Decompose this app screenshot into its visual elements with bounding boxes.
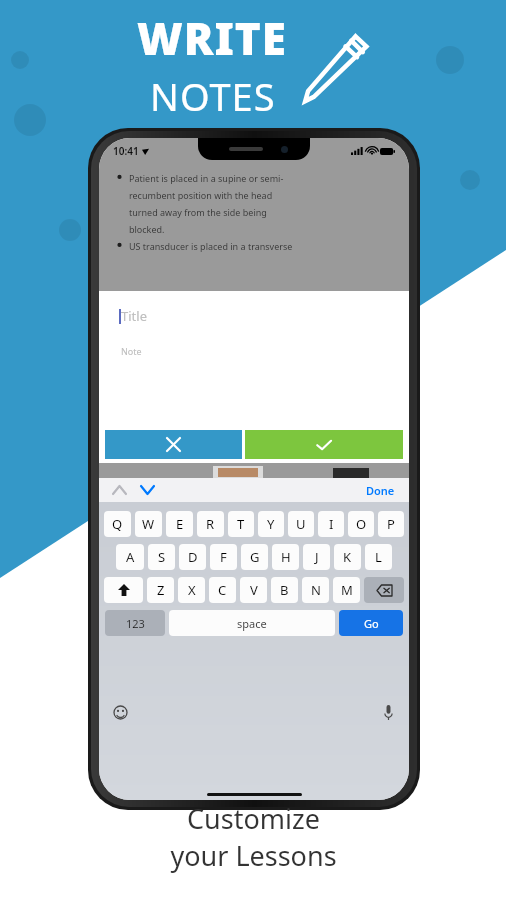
staticText: D bbox=[188, 548, 198, 566]
staticText: space bbox=[237, 616, 267, 631]
button[interactable]: S bbox=[148, 544, 175, 570]
button[interactable]: H bbox=[272, 544, 299, 570]
staticText: 10:41 bbox=[113, 144, 139, 158]
staticText: Q bbox=[112, 515, 123, 533]
button[interactable]: space bbox=[169, 610, 335, 636]
staticText: recumbent position with the head bbox=[129, 189, 273, 201]
staticText: X bbox=[188, 581, 196, 599]
button[interactable]: Backspace bbox=[364, 577, 404, 603]
button[interactable]: Dictate bbox=[379, 703, 397, 721]
button[interactable]: Cancel bbox=[105, 430, 242, 459]
button[interactable]: P bbox=[378, 511, 404, 537]
staticText: Go bbox=[364, 616, 379, 631]
button[interactable]: Shift bbox=[104, 577, 143, 603]
staticText: E bbox=[176, 515, 184, 533]
button[interactable]: M bbox=[333, 577, 360, 603]
button[interactable]: Next field bbox=[137, 480, 157, 500]
staticText: your Lessons bbox=[170, 837, 337, 874]
staticText: L bbox=[375, 548, 382, 566]
staticText: U bbox=[296, 515, 306, 533]
staticText: O bbox=[356, 515, 367, 533]
button[interactable]: G bbox=[241, 544, 268, 570]
staticText: N bbox=[311, 581, 321, 599]
button[interactable]: Save bbox=[245, 430, 403, 459]
button[interactable]: K bbox=[334, 544, 361, 570]
button[interactable]: Q bbox=[104, 511, 131, 537]
button[interactable]: I bbox=[318, 511, 344, 537]
button[interactable]: E bbox=[166, 511, 193, 537]
staticText: C bbox=[218, 581, 227, 599]
button[interactable]: U bbox=[288, 511, 314, 537]
staticText: I bbox=[329, 515, 334, 533]
staticText: turned away from the side being bbox=[129, 206, 267, 218]
button[interactable]: Previous field bbox=[109, 480, 129, 500]
staticText: H bbox=[281, 548, 291, 566]
button[interactable]: F bbox=[210, 544, 237, 570]
button[interactable]: T bbox=[228, 511, 254, 537]
staticText: V bbox=[250, 581, 258, 599]
button[interactable]: Emoji bbox=[111, 703, 129, 721]
button[interactable]: W bbox=[135, 511, 162, 537]
button[interactable]: R bbox=[197, 511, 224, 537]
button[interactable]: Go bbox=[339, 610, 403, 636]
staticText: P bbox=[387, 515, 395, 533]
staticText: NOTES bbox=[150, 70, 276, 122]
button[interactable]: Y bbox=[258, 511, 284, 537]
staticText: W bbox=[142, 515, 155, 533]
button[interactable]: B bbox=[271, 577, 298, 603]
staticText: Patient is placed in a supine or semi- bbox=[129, 172, 284, 184]
staticText: B bbox=[280, 581, 289, 599]
staticText: Customize bbox=[187, 800, 320, 837]
button[interactable]: Done bbox=[362, 481, 399, 500]
staticText: R bbox=[206, 515, 215, 533]
staticText: blocked. bbox=[129, 223, 165, 235]
button[interactable]: D bbox=[179, 544, 206, 570]
staticText: US transducer is placed in a transverse bbox=[129, 240, 293, 252]
staticText: Z bbox=[157, 581, 165, 599]
staticText: WRITE bbox=[137, 8, 288, 68]
button[interactable]: Z bbox=[147, 577, 174, 603]
staticText: K bbox=[343, 548, 352, 566]
button[interactable]: O bbox=[348, 511, 374, 537]
staticText: S bbox=[158, 548, 166, 566]
staticText: G bbox=[250, 548, 260, 566]
button[interactable]: V bbox=[240, 577, 267, 603]
staticText: Title bbox=[121, 307, 147, 325]
button[interactable]: L bbox=[365, 544, 392, 570]
staticText: J bbox=[315, 548, 319, 566]
button[interactable]: X bbox=[178, 577, 205, 603]
staticText: Done bbox=[366, 483, 395, 498]
button[interactable]: J bbox=[303, 544, 330, 570]
staticText: Note bbox=[121, 345, 142, 357]
staticText: F bbox=[220, 548, 227, 566]
button[interactable]: C bbox=[209, 577, 236, 603]
staticText: Y bbox=[267, 515, 275, 533]
button[interactable]: 123 bbox=[105, 610, 165, 636]
button[interactable]: A bbox=[116, 544, 144, 570]
staticText: 123 bbox=[126, 616, 145, 631]
staticText: A bbox=[126, 548, 135, 566]
button[interactable]: N bbox=[302, 577, 329, 603]
staticText: T bbox=[237, 515, 245, 533]
staticText: M bbox=[341, 581, 353, 599]
